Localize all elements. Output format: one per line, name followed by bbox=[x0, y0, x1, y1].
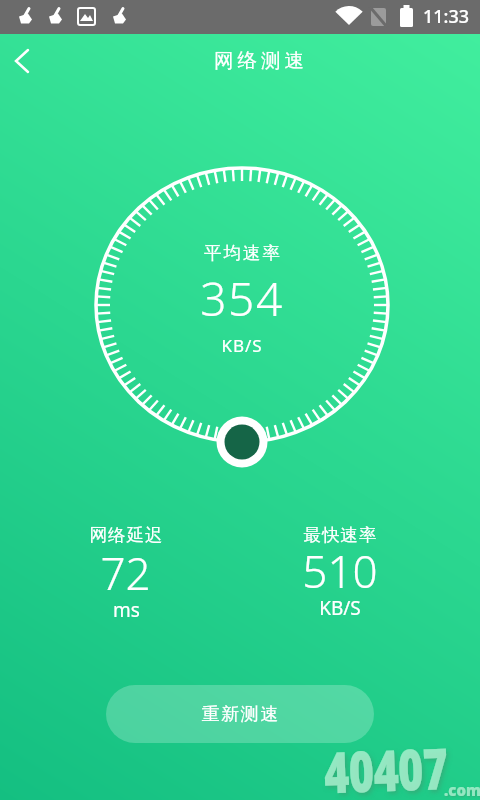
staticText: 平均速率 bbox=[203, 242, 281, 264]
staticText: 重新测速 bbox=[201, 703, 279, 726]
staticText: KB/S bbox=[221, 334, 263, 357]
staticText: 72 bbox=[100, 543, 151, 593]
staticText: 40407 bbox=[323, 728, 449, 800]
button[interactable]: 重新测速 bbox=[106, 685, 374, 743]
staticText: 354 bbox=[200, 267, 284, 327]
staticText: 网络测速 bbox=[212, 48, 306, 73]
staticText: .com bbox=[444, 780, 480, 800]
button[interactable] bbox=[4, 40, 44, 80]
staticText: ms bbox=[113, 597, 140, 623]
staticText: 最快速率 bbox=[303, 524, 377, 546]
staticText: KB/S bbox=[319, 595, 361, 621]
staticText: 11:33 bbox=[423, 4, 470, 29]
staticText: 510 bbox=[302, 541, 378, 591]
staticText: 网络延迟 bbox=[89, 524, 163, 546]
